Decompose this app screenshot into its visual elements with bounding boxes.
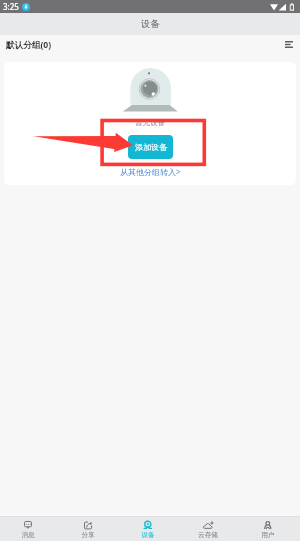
button[interactable]: 云存储 <box>178 517 238 541</box>
button[interactable]: 分享 <box>58 517 118 541</box>
button[interactable]: 从其他分组转入> <box>120 166 181 177</box>
button[interactable]: 添加设备 <box>128 135 173 159</box>
staticText: 分享 <box>81 531 95 539</box>
button[interactable]: List options <box>280 35 298 53</box>
staticText: 云存储 <box>198 531 218 539</box>
button[interactable]: 设备 <box>118 517 178 541</box>
staticText: 从其他分组转入> <box>120 166 181 177</box>
staticText: 设备 <box>141 18 160 30</box>
staticText: 添加设备 <box>135 142 167 152</box>
button[interactable]: 消息 <box>0 517 58 541</box>
button[interactable]: 用户 <box>238 517 298 541</box>
staticText: 3:25 <box>3 1 19 12</box>
staticText: 用户 <box>261 531 275 539</box>
staticText: 默认分组(0) <box>6 39 52 51</box>
staticText: 设备 <box>141 531 155 539</box>
staticText: 暂无设备 <box>135 118 166 128</box>
staticText: 消息 <box>21 531 35 539</box>
